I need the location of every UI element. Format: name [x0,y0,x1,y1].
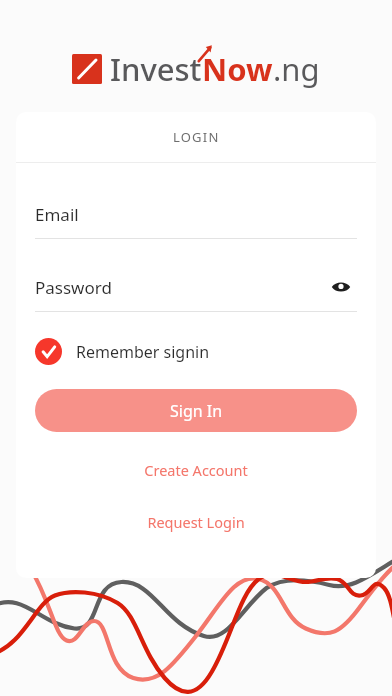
staticText: LOGIN [173,128,220,146]
staticText: .ng [273,48,320,90]
button[interactable]: Show password [325,271,357,303]
button[interactable]: Email [35,190,357,238]
button[interactable]: Password [35,263,357,311]
staticText: Email [35,203,79,226]
staticText: Sign In [170,400,223,422]
staticText: Invest [110,48,202,90]
button[interactable]: Request Login [35,506,357,538]
button[interactable]: Remember signin [35,334,210,369]
staticText: Remember signin [76,341,210,363]
staticText: Request Login [147,512,245,532]
button[interactable]: Create Account [35,454,357,486]
button[interactable]: Sign In [35,389,357,432]
staticText: Create Account [144,460,248,480]
staticText: Password [35,276,112,299]
staticText: Now [202,48,273,90]
